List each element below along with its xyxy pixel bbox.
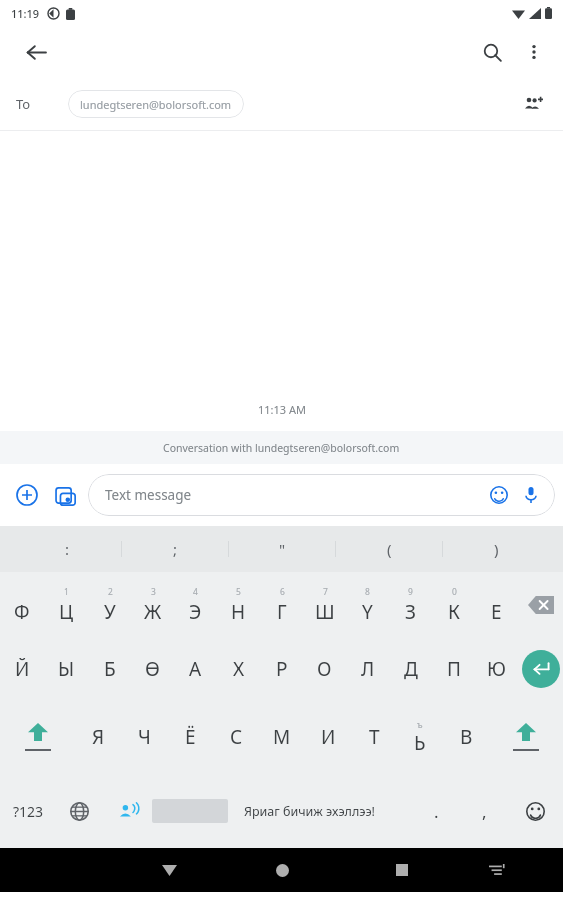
button[interactable]: Back bbox=[149, 850, 189, 890]
staticText: ъ bbox=[417, 718, 423, 730]
button[interactable]: Switch keyboard bbox=[477, 850, 517, 890]
button[interactable]: О bbox=[303, 640, 346, 698]
staticText: В bbox=[460, 724, 473, 750]
button[interactable]: Change language bbox=[56, 786, 102, 836]
button[interactable]: Emoji keyboard bbox=[508, 786, 563, 836]
button[interactable]: 7 bbox=[303, 574, 346, 636]
staticText: 3 bbox=[151, 586, 156, 598]
button[interactable]: ъ bbox=[397, 704, 443, 770]
button[interactable]: . bbox=[412, 786, 460, 836]
button[interactable]: 2 bbox=[88, 574, 131, 636]
button[interactable]: , bbox=[460, 786, 508, 836]
staticText: 8 bbox=[365, 586, 370, 598]
staticText: Ю bbox=[487, 656, 506, 682]
button[interactable]: Ф bbox=[0, 574, 44, 636]
staticText: И bbox=[321, 724, 336, 750]
button[interactable]: Ы bbox=[44, 640, 88, 698]
button[interactable]: 1 bbox=[44, 574, 88, 636]
staticText: 7 bbox=[323, 586, 328, 598]
staticText: Я bbox=[92, 724, 105, 750]
staticText: , bbox=[482, 800, 487, 823]
button[interactable]: Recent apps bbox=[382, 850, 422, 890]
button[interactable]: Б bbox=[88, 640, 131, 698]
staticText: Н bbox=[231, 599, 246, 625]
staticText: Б bbox=[104, 656, 116, 682]
staticText: Д bbox=[404, 656, 418, 682]
button[interactable]: С bbox=[213, 704, 259, 770]
staticText: lundegtseren@bolorsoft.com bbox=[80, 97, 232, 112]
button[interactable]: Й bbox=[0, 640, 44, 698]
button[interactable]: А bbox=[174, 640, 217, 698]
staticText: To bbox=[16, 95, 31, 113]
button[interactable]: Take photo bbox=[46, 476, 84, 514]
button[interactable]: М bbox=[259, 704, 305, 770]
button[interactable]: Home bbox=[262, 850, 302, 890]
staticText: Г bbox=[277, 599, 287, 625]
button[interactable]: ; bbox=[122, 526, 228, 572]
button[interactable]: lundegtseren@bolorsoft.com bbox=[68, 90, 244, 118]
staticText: Conversation with lundegtseren@bolorsoft… bbox=[163, 441, 400, 455]
button[interactable]: Т bbox=[351, 704, 397, 770]
button[interactable]: П bbox=[432, 640, 475, 698]
staticText: У bbox=[104, 599, 116, 625]
button[interactable]: Я bbox=[75, 704, 121, 770]
button[interactable]: Х bbox=[217, 640, 260, 698]
button[interactable]: Ю bbox=[475, 640, 518, 698]
staticText: ; bbox=[173, 539, 178, 559]
button[interactable]: Е bbox=[475, 574, 518, 636]
button[interactable]: " bbox=[229, 526, 335, 572]
button[interactable]: 0 bbox=[432, 574, 475, 636]
button[interactable]: 3 bbox=[131, 574, 174, 636]
button[interactable]: 9 bbox=[389, 574, 432, 636]
staticText: Ф bbox=[14, 599, 30, 625]
button[interactable]: : bbox=[14, 526, 121, 572]
button[interactable]: Backspace bbox=[518, 574, 563, 636]
staticText: 6 bbox=[280, 586, 285, 598]
staticText: К bbox=[448, 599, 460, 625]
button[interactable]: Л bbox=[346, 640, 389, 698]
button[interactable]: Ө bbox=[131, 640, 174, 698]
staticText: А bbox=[189, 656, 202, 682]
button[interactable]: Enter bbox=[518, 640, 563, 698]
staticText: Ь bbox=[414, 730, 426, 756]
button[interactable]: Add recipients bbox=[513, 84, 553, 124]
button[interactable]: Text message bbox=[88, 474, 555, 516]
button[interactable]: 5 bbox=[217, 574, 260, 636]
staticText: " bbox=[279, 539, 286, 559]
button[interactable]: Shift bbox=[489, 704, 563, 770]
staticText: Е bbox=[491, 599, 502, 625]
staticText: : bbox=[65, 539, 70, 559]
button[interactable]: ?123 bbox=[0, 786, 56, 836]
staticText: Л bbox=[361, 656, 375, 682]
button[interactable]: More options bbox=[513, 31, 555, 73]
staticText: Т bbox=[369, 724, 380, 750]
staticText: Ш bbox=[315, 599, 335, 625]
staticText: Э bbox=[189, 599, 202, 625]
button[interactable]: Ё bbox=[167, 704, 213, 770]
button[interactable]: Ч bbox=[121, 704, 167, 770]
staticText: 2 bbox=[108, 586, 113, 598]
button[interactable]: Add attachment bbox=[8, 476, 46, 514]
staticText: Ё bbox=[185, 724, 196, 750]
button[interactable]: Р bbox=[260, 640, 303, 698]
button[interactable]: Emoji bbox=[483, 479, 515, 511]
button[interactable]: 8 bbox=[346, 574, 389, 636]
button[interactable]: И bbox=[305, 704, 351, 770]
button[interactable]: В bbox=[443, 704, 489, 770]
button[interactable]: ) bbox=[443, 526, 549, 572]
button[interactable]: Space bbox=[152, 786, 412, 836]
staticText: З bbox=[405, 599, 416, 625]
button[interactable]: Search bbox=[471, 31, 513, 73]
button[interactable]: Д bbox=[389, 640, 432, 698]
button[interactable]: ( bbox=[336, 526, 442, 572]
button[interactable]: 6 bbox=[260, 574, 303, 636]
button[interactable]: Back bbox=[14, 30, 58, 74]
button[interactable]: Shift bbox=[0, 704, 75, 770]
staticText: Ы bbox=[58, 656, 75, 682]
staticText: Ө bbox=[145, 656, 160, 682]
button[interactable]: Voice input bbox=[515, 479, 547, 511]
staticText: Ж bbox=[144, 599, 162, 625]
button[interactable]: 4 bbox=[174, 574, 217, 636]
staticText: ) bbox=[494, 539, 499, 559]
button[interactable]: Voice typing bbox=[102, 786, 152, 836]
